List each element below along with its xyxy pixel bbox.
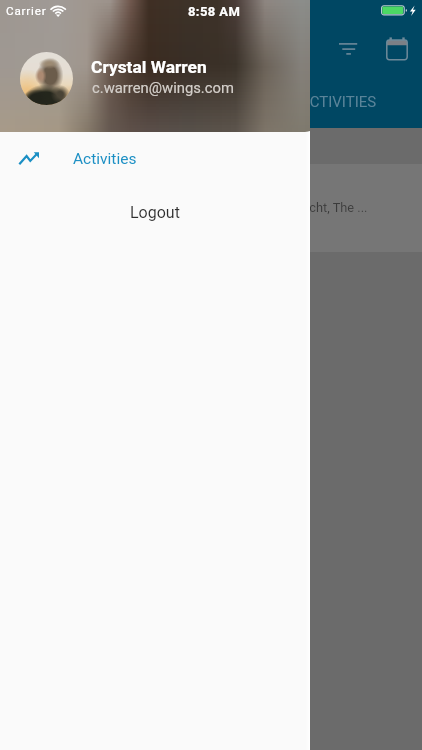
staticText: Activities	[73, 150, 137, 168]
staticText: Logout	[130, 203, 180, 222]
button[interactable]: Filter	[326, 27, 370, 69]
staticText: 8:58 AM	[188, 4, 241, 19]
staticText: ACTIVITIES	[300, 93, 377, 111]
button[interactable]: Activities	[0, 143, 310, 177]
staticText: Crystal Warren	[91, 57, 207, 77]
staticText: c.warren@wings.com	[92, 79, 234, 96]
button[interactable]: Calendar	[375, 27, 419, 69]
button[interactable]: Stormy Night at the Yacht, The ...	[0, 164, 422, 252]
button[interactable]: Logout	[0, 196, 310, 230]
staticText: Carrier	[6, 4, 47, 18]
staticText: Stormy Night at the Yacht, The ...	[182, 200, 368, 215]
